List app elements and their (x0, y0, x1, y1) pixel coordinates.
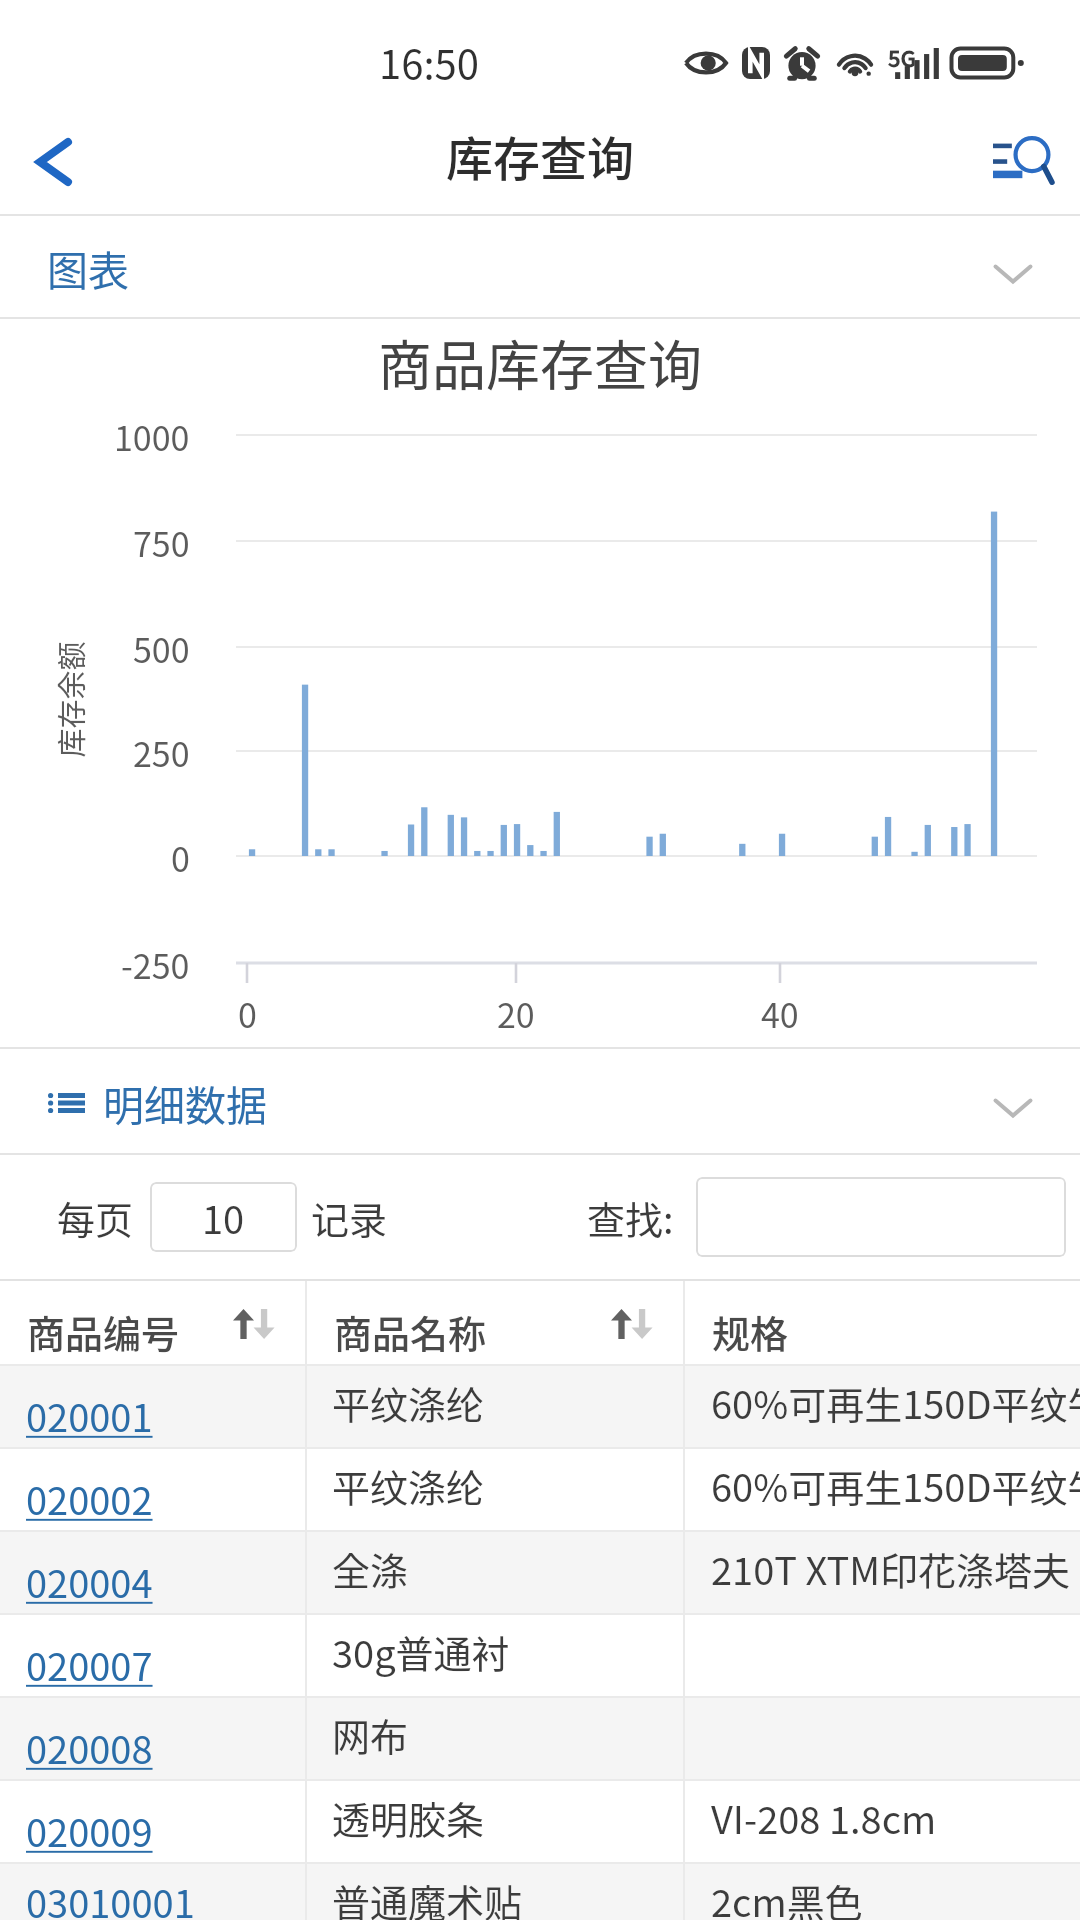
staticText: 平纹涤纶 (332, 1458, 485, 1513)
staticText: 750 (133, 518, 190, 564)
staticText: 查找: (587, 1190, 674, 1245)
button[interactable]: 020007 (0, 1615, 1080, 1696)
button[interactable]: Search field (696, 1177, 1066, 1257)
button[interactable]: Search (977, 116, 1069, 208)
button[interactable]: 020001 (0, 1366, 305, 1447)
staticText: 商品库存查询 (378, 323, 702, 401)
button[interactable]: 020001 (0, 1366, 1080, 1447)
staticText: 每页 (57, 1190, 134, 1245)
button[interactable]: 10 (150, 1182, 297, 1252)
staticText: 明细数据 (103, 1073, 267, 1132)
staticText: 020007 (26, 1637, 153, 1692)
staticText: 0 (171, 833, 190, 879)
button[interactable]: 03010001 (0, 1864, 1080, 1920)
button[interactable]: 商品名称 (307, 1281, 683, 1364)
button[interactable]: 020008 (0, 1698, 1080, 1779)
button[interactable]: 商品编号 (0, 1281, 305, 1364)
button[interactable]: 020002 (0, 1449, 1080, 1530)
staticText: 全涤 (332, 1541, 409, 1596)
staticText: VI-208 1.8cm (711, 1790, 937, 1845)
staticText: 1000 (114, 412, 190, 458)
staticText: 250 (133, 728, 190, 774)
staticText: 60%可再生150D平纹牛 (711, 1458, 1080, 1513)
staticText: 透明胶条 (332, 1790, 485, 1845)
button[interactable]: 020002 (0, 1449, 305, 1530)
button[interactable]: 020004 (0, 1532, 305, 1613)
button[interactable]: 020009 (0, 1781, 1080, 1862)
button[interactable]: 明细数据 (0, 1049, 1080, 1155)
staticText: 30g普通衬 (332, 1624, 510, 1679)
staticText: 020001 (26, 1388, 153, 1443)
button[interactable]: 03010001 (0, 1864, 305, 1920)
staticText: 0 (238, 989, 257, 1038)
staticText: 16:50 (379, 33, 479, 91)
staticText: 20 (497, 989, 535, 1038)
staticText: 规格 (712, 1304, 789, 1359)
staticText: 5G (888, 41, 916, 72)
staticText: 210T XTM印花涤塔夫 (711, 1541, 1071, 1596)
button[interactable]: 规格 (685, 1281, 1080, 1364)
button[interactable]: Back (0, 108, 108, 216)
button[interactable]: 020008 (0, 1698, 305, 1779)
staticText: 商品名称 (334, 1304, 487, 1359)
staticText: 图表 (47, 238, 129, 297)
button[interactable]: 020009 (0, 1781, 305, 1862)
staticText: 60%可再生150D平纹牛 (711, 1375, 1080, 1430)
staticText: 500 (133, 624, 190, 670)
staticText: 库存查询 (446, 121, 634, 189)
staticText: 网布 (332, 1707, 409, 1762)
staticText: 库存余额 (48, 640, 90, 757)
staticText: 记录 (311, 1190, 388, 1245)
staticText: 03010001 (26, 1874, 195, 1920)
staticText: 020008 (26, 1720, 153, 1775)
staticText: 商品编号 (27, 1304, 180, 1359)
staticText: 普通魔术贴 (332, 1873, 523, 1920)
staticText: 平纹涤纶 (332, 1375, 485, 1430)
staticText: 020004 (26, 1554, 153, 1609)
button[interactable]: 020007 (0, 1615, 305, 1696)
staticText: 2cm黑色 (711, 1873, 863, 1920)
staticText: 020009 (26, 1803, 153, 1858)
staticText: 020002 (26, 1471, 153, 1526)
staticText: 40 (761, 989, 799, 1038)
button[interactable]: 020004 (0, 1532, 1080, 1613)
staticText: -250 (121, 940, 190, 986)
button[interactable]: 图表 (0, 216, 1080, 319)
staticText: 10 (202, 1190, 245, 1245)
